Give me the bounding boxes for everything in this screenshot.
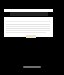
button[interactable]: Home: [23, 66, 41, 68]
